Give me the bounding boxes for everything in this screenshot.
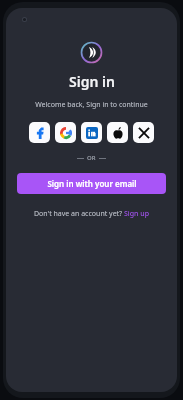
button[interactable]: Sign in with Apple — [107, 122, 128, 143]
staticText: Welcome back, Sign in to continue — [35, 100, 148, 110]
staticText: Sign in with your email — [47, 178, 137, 189]
staticText: OR — [87, 154, 96, 162]
button[interactable]: Don't have an account yet? Sign up — [30, 207, 153, 221]
button[interactable]: Sign in with Google — [55, 122, 76, 143]
staticText: Sign in — [69, 72, 115, 91]
button[interactable]: Sign in with LinkedIn — [81, 122, 102, 143]
button[interactable]: Sign in with your email — [17, 173, 166, 194]
button[interactable]: Sign in with Facebook — [29, 122, 50, 143]
staticText: Don't have an account yet? Sign up — [34, 209, 149, 219]
button[interactable]: Sign in with X — [133, 122, 154, 143]
